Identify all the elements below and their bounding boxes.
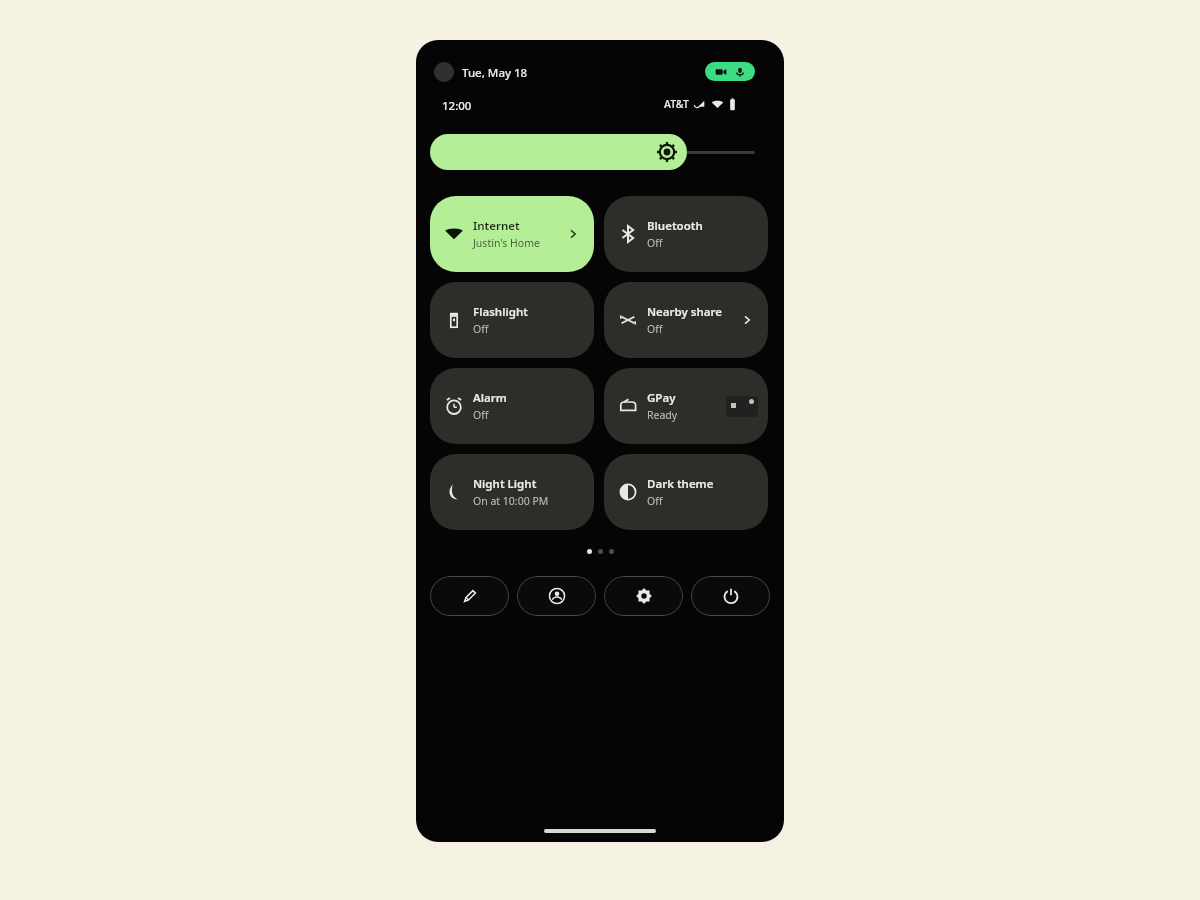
staticText: Off <box>647 322 663 336</box>
button[interactable]: Profile <box>434 62 454 82</box>
staticText: Night Light <box>473 476 537 492</box>
staticText: Nearby share <box>647 304 723 320</box>
staticText: Ready <box>647 408 678 422</box>
staticText: On at 10:00 PM <box>473 494 549 508</box>
button[interactable]: Nearby share <box>604 282 768 358</box>
staticText: Off <box>647 236 663 250</box>
staticText: Tue, May 18 <box>462 65 528 81</box>
staticText: Alarm <box>473 390 507 406</box>
button[interactable]: User <box>517 576 596 616</box>
button[interactable]: GPay <box>604 368 768 444</box>
staticText: GPay <box>647 390 676 406</box>
button[interactable]: Night Light <box>430 454 594 530</box>
staticText: Off <box>473 322 489 336</box>
staticText: AT&T <box>664 97 689 111</box>
button[interactable]: Alarm <box>430 368 594 444</box>
staticText: Off <box>473 408 489 422</box>
staticText: Internet <box>473 218 520 234</box>
staticText: Flashlight <box>473 304 528 320</box>
staticText: Dark theme <box>647 476 714 492</box>
button[interactable]: Brightness <box>430 134 755 170</box>
button[interactable]: Bluetooth <box>604 196 768 272</box>
staticText: 12:00 <box>442 98 472 114</box>
staticText: Justin's Home <box>473 236 540 250</box>
button[interactable]: Internet <box>430 196 594 272</box>
button[interactable]: Edit tiles <box>430 576 509 616</box>
staticText: Off <box>647 494 663 508</box>
button[interactable]: Settings <box>604 576 683 616</box>
button[interactable]: Power <box>691 576 770 616</box>
button[interactable]: Flashlight <box>430 282 594 358</box>
button[interactable]: Dark theme <box>604 454 768 530</box>
button[interactable]: Camera and microphone access <box>705 62 755 81</box>
staticText: Bluetooth <box>647 218 703 234</box>
